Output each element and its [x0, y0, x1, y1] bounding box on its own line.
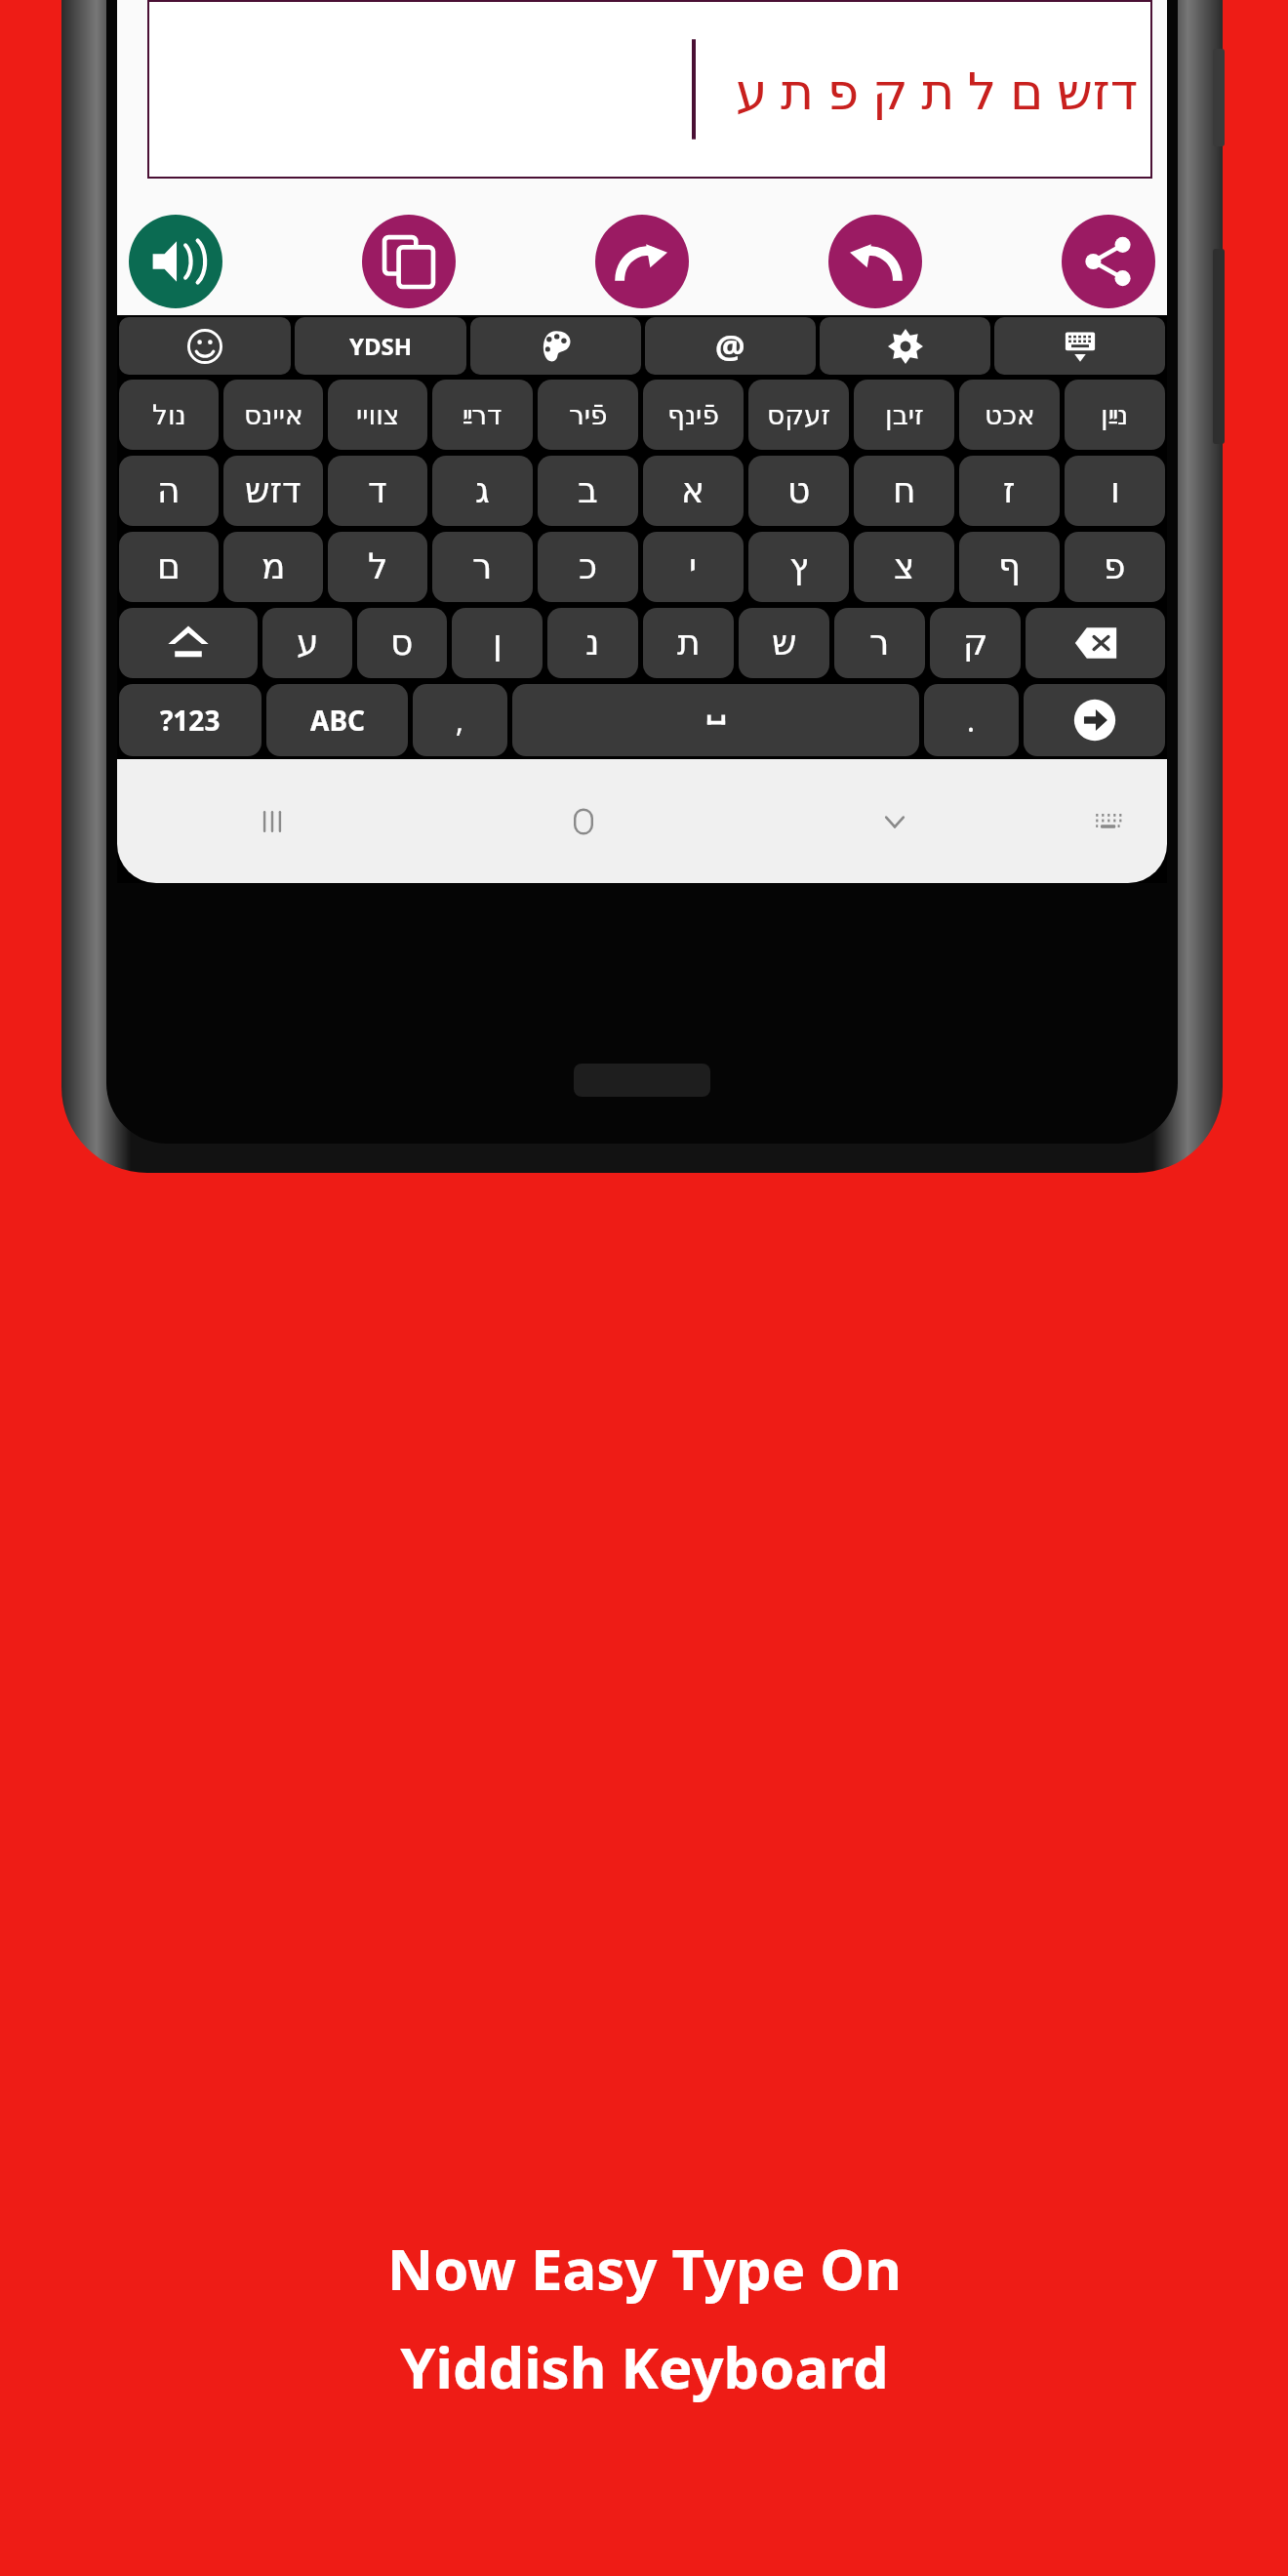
staticText: @ — [715, 324, 745, 369]
staticText: כ — [579, 546, 598, 587]
button[interactable]: Hide keyboard — [994, 317, 1165, 375]
button[interactable]: Theme — [470, 317, 641, 375]
staticText: ס — [390, 623, 414, 664]
button[interactable]: Recent apps — [117, 759, 427, 883]
button[interactable]: זיבן — [854, 380, 954, 450]
staticText: Now Easy Type On — [387, 2230, 902, 2307]
button[interactable]: ד — [328, 456, 427, 526]
staticText: ?123 — [160, 702, 221, 739]
button[interactable]: דרײַ — [432, 380, 533, 450]
button[interactable]: י — [643, 532, 744, 602]
button[interactable]: ב — [538, 456, 638, 526]
button[interactable]: ת — [643, 608, 734, 678]
button[interactable]: א — [643, 456, 744, 526]
button[interactable]: ש — [739, 608, 829, 678]
button[interactable]: ח — [854, 456, 954, 526]
button[interactable]: פ — [1065, 532, 1165, 602]
button[interactable]: פֿינף — [643, 380, 744, 450]
button[interactable]: ג — [432, 456, 533, 526]
staticText: צ — [894, 546, 915, 587]
button[interactable]: איינס — [223, 380, 323, 450]
button[interactable]: Undo — [828, 215, 922, 308]
button[interactable]: ט — [748, 456, 849, 526]
staticText: ש — [772, 623, 797, 664]
staticText: נ — [585, 623, 600, 664]
button[interactable]: ר — [834, 608, 925, 678]
staticText: זעקס — [767, 399, 831, 431]
button[interactable]: Backspace — [1026, 608, 1165, 678]
button[interactable]: פֿיר — [538, 380, 638, 450]
button[interactable]: צוויי — [328, 380, 427, 450]
button[interactable]: צ — [854, 532, 954, 602]
button[interactable]: נול — [119, 380, 219, 450]
staticText: ם — [157, 546, 181, 587]
button[interactable]: Share — [1062, 215, 1155, 308]
button[interactable]: אכט — [959, 380, 1060, 450]
button[interactable]: דזש ם ל ת ק פ ת ע — [147, 0, 1152, 179]
button[interactable]: ה — [119, 456, 219, 526]
staticText: ן — [493, 623, 503, 664]
button[interactable]: Keyboard switch — [1050, 759, 1167, 883]
staticText: ע — [297, 623, 319, 664]
staticText: ב — [578, 470, 598, 511]
button[interactable]: Copy — [362, 215, 456, 308]
staticText: ט — [787, 470, 811, 511]
staticText: א — [681, 470, 705, 511]
staticText: ץ — [789, 546, 809, 587]
staticText: ז — [1003, 470, 1016, 511]
button[interactable]: דזש — [223, 456, 323, 526]
staticText: דזש — [245, 470, 302, 511]
staticText: ק — [963, 623, 988, 664]
staticText: , — [456, 701, 464, 741]
button[interactable]: מ — [223, 532, 323, 602]
button[interactable]: , — [413, 684, 507, 756]
button[interactable]: Enter — [1024, 684, 1165, 756]
button[interactable]: כ — [538, 532, 638, 602]
staticText: ה — [157, 470, 181, 511]
button[interactable]: ן — [452, 608, 543, 678]
button[interactable]: Emoji — [119, 317, 291, 375]
button[interactable]: ס — [357, 608, 447, 678]
staticText: זיבן — [885, 399, 924, 431]
staticText: צוויי — [356, 399, 400, 431]
button[interactable]: ם — [119, 532, 219, 602]
button[interactable]: Shift — [119, 608, 258, 678]
button[interactable]: ר — [432, 532, 533, 602]
staticText: ג — [475, 470, 490, 511]
staticText: פ — [1104, 546, 1126, 587]
button[interactable]: Settings — [820, 317, 990, 375]
staticText: איינס — [244, 399, 303, 431]
staticText: ABC — [310, 702, 365, 739]
staticText: Yiddish Keyboard — [400, 2328, 889, 2405]
button[interactable]: נ — [547, 608, 638, 678]
staticText: פֿינף — [667, 399, 719, 431]
button[interactable]: Speak — [129, 215, 222, 308]
staticText: פֿיר — [569, 399, 608, 431]
staticText: ח — [893, 470, 916, 511]
staticText: ד — [368, 470, 387, 511]
button[interactable]: ו — [1065, 456, 1165, 526]
button[interactable]: ף — [959, 532, 1060, 602]
staticText: נײַן — [1101, 399, 1129, 431]
staticText: נול — [152, 399, 186, 431]
staticText: דזש ם ל ת ק פ ת ע — [736, 55, 1139, 124]
button[interactable]: Home — [427, 759, 739, 883]
button[interactable]: YDSH — [295, 317, 466, 375]
staticText: ל — [368, 546, 388, 587]
button[interactable]: ABC — [266, 684, 408, 756]
button[interactable]: נײַן — [1065, 380, 1165, 450]
button[interactable]: ז — [959, 456, 1060, 526]
staticText: אכט — [985, 399, 1035, 431]
button[interactable]: ק — [930, 608, 1021, 678]
button[interactable]: Space — [512, 684, 919, 756]
button[interactable]: Redo — [595, 215, 689, 308]
staticText: ת — [677, 623, 701, 664]
button[interactable]: . — [924, 684, 1019, 756]
button[interactable]: ?123 — [119, 684, 262, 756]
button[interactable]: Back — [739, 759, 1050, 883]
button[interactable]: זעקס — [748, 380, 849, 450]
button[interactable]: ע — [262, 608, 352, 678]
button[interactable]: ל — [328, 532, 427, 602]
button[interactable]: ץ — [748, 532, 849, 602]
button[interactable]: @ — [645, 317, 816, 375]
